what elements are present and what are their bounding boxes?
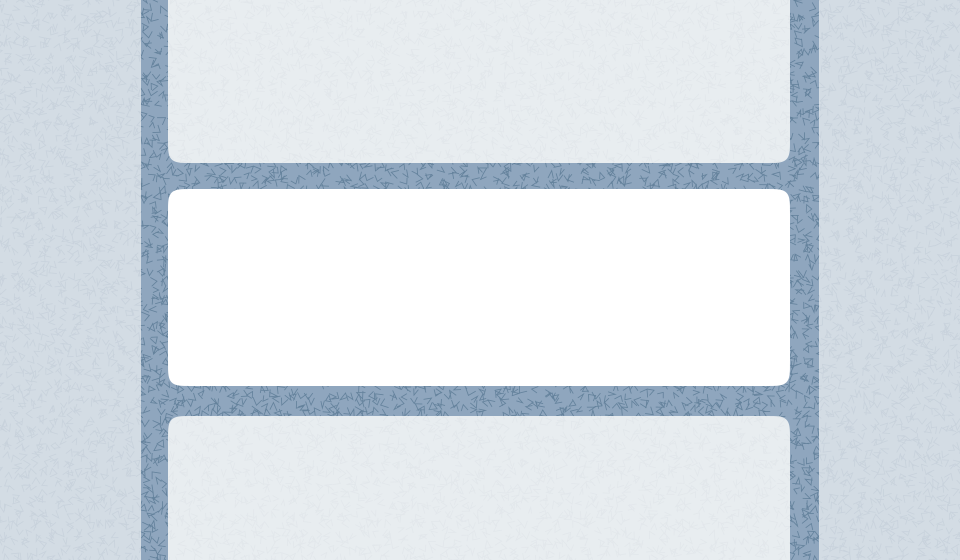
button[interactable]: List item, below [168,416,790,560]
button[interactable]: List item, selected [168,189,790,386]
